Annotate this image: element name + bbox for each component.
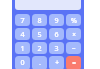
button[interactable]: Multiply — [66, 28, 81, 40]
button[interactable]: Add — [49, 56, 64, 69]
staticText: 6 — [54, 29, 59, 39]
button[interactable]: Decimal point — [32, 56, 47, 69]
button[interactable]: Five — [32, 28, 47, 40]
button[interactable]: Four — [15, 28, 30, 40]
button[interactable]: Subtract — [66, 42, 81, 54]
staticText: 5 — [37, 29, 42, 39]
button[interactable]: Nine — [49, 14, 64, 26]
button[interactable]: Six — [49, 28, 64, 40]
staticText: × — [72, 30, 76, 39]
staticText: 0 — [20, 57, 25, 67]
staticText: 8 — [37, 15, 42, 25]
staticText: . — [39, 57, 41, 67]
staticText: % — [71, 16, 77, 25]
staticText: 7 — [20, 15, 25, 25]
button[interactable]: Zero — [15, 56, 30, 69]
staticText: 9 — [54, 15, 59, 25]
staticText: 1 — [20, 43, 25, 53]
button[interactable]: Result display — [15, 0, 81, 10]
button[interactable]: Two — [32, 42, 47, 54]
button[interactable]: One — [15, 42, 30, 54]
button[interactable]: Equals — [66, 56, 81, 69]
staticText: 3 — [54, 43, 59, 53]
button[interactable]: Seven — [15, 14, 30, 26]
staticText: 4 — [20, 29, 25, 39]
staticText: 2 — [37, 43, 42, 53]
staticText: + — [55, 58, 59, 67]
staticText: − — [72, 44, 76, 53]
button[interactable]: Eight — [32, 14, 47, 26]
staticText: = — [72, 58, 76, 67]
button[interactable]: Percent — [66, 14, 81, 26]
button[interactable]: Three — [49, 42, 64, 54]
